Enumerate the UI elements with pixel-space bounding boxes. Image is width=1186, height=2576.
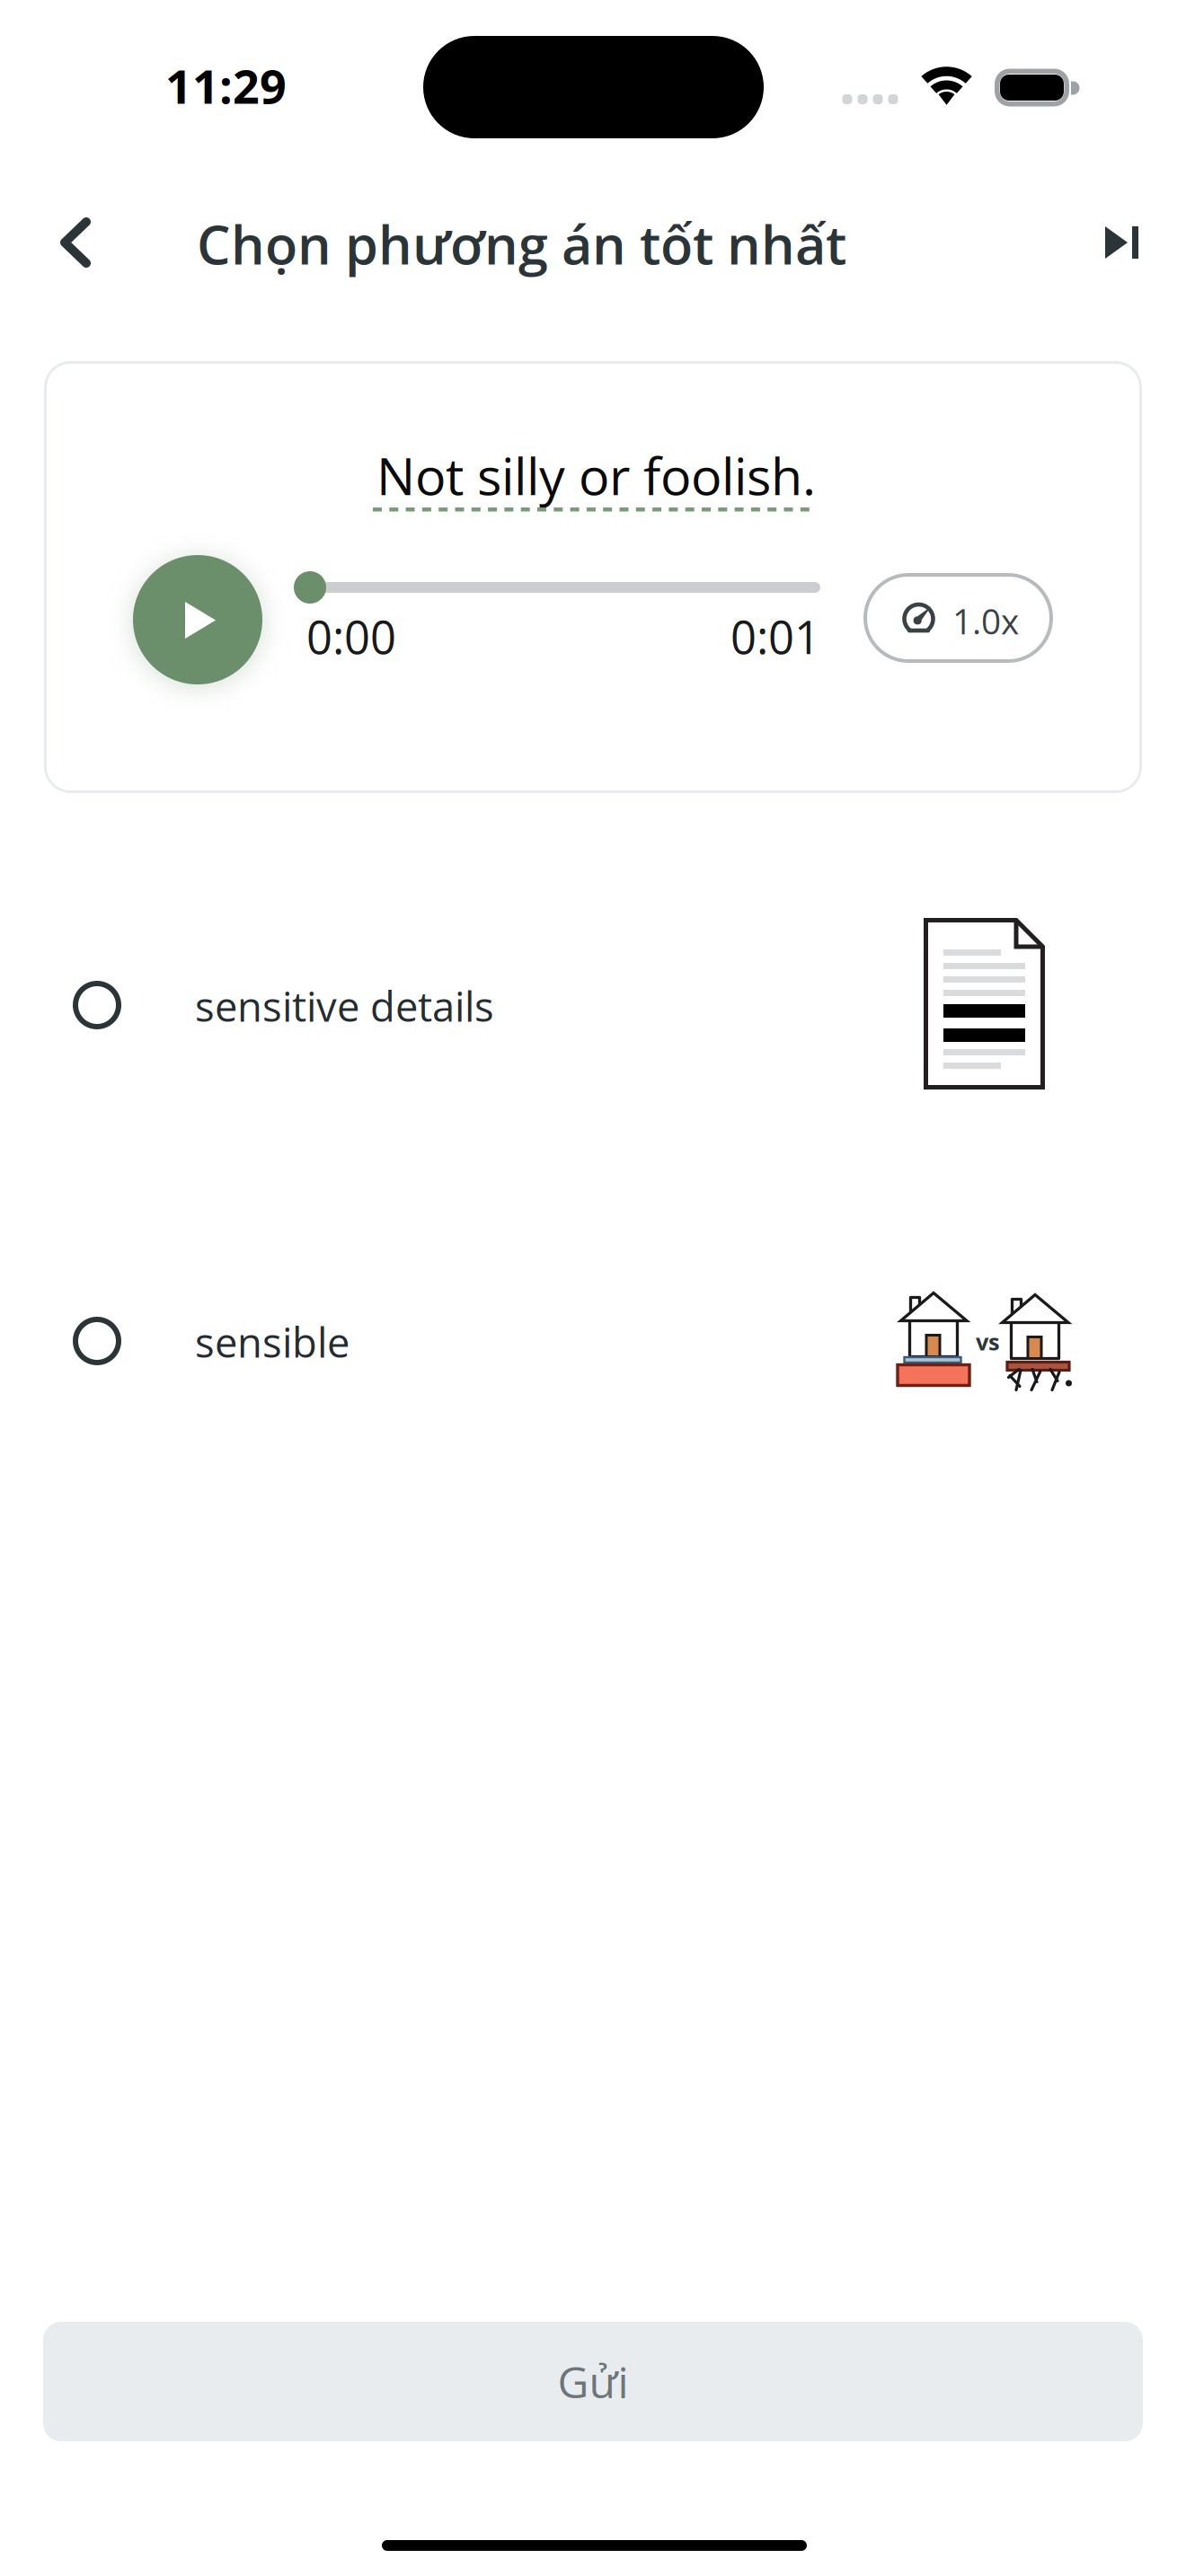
staticText: Gửi <box>558 2352 628 2411</box>
staticText: vs <box>976 1326 1000 1357</box>
button[interactable]: Back <box>29 189 137 296</box>
button[interactable]: Skip <box>1069 194 1168 293</box>
staticText: Not silly or foolish. <box>376 440 816 510</box>
staticText: 1.0x <box>952 597 1019 645</box>
button[interactable]: Play <box>133 555 262 684</box>
staticText: 11:29 <box>165 54 287 117</box>
button[interactable]: Gửi <box>43 2322 1143 2441</box>
staticText: sensitive details <box>195 978 494 1034</box>
staticText: Chọn phương án tốt nhất <box>197 207 846 280</box>
staticText: 0:00 <box>306 605 396 667</box>
staticText: 0:01 <box>730 605 820 667</box>
button[interactable]: sensible <box>43 1233 1186 1458</box>
staticText: sensible <box>195 1314 350 1369</box>
button[interactable]: sensitive details <box>43 897 1186 1122</box>
button[interactable]: Playback speed <box>863 573 1053 663</box>
